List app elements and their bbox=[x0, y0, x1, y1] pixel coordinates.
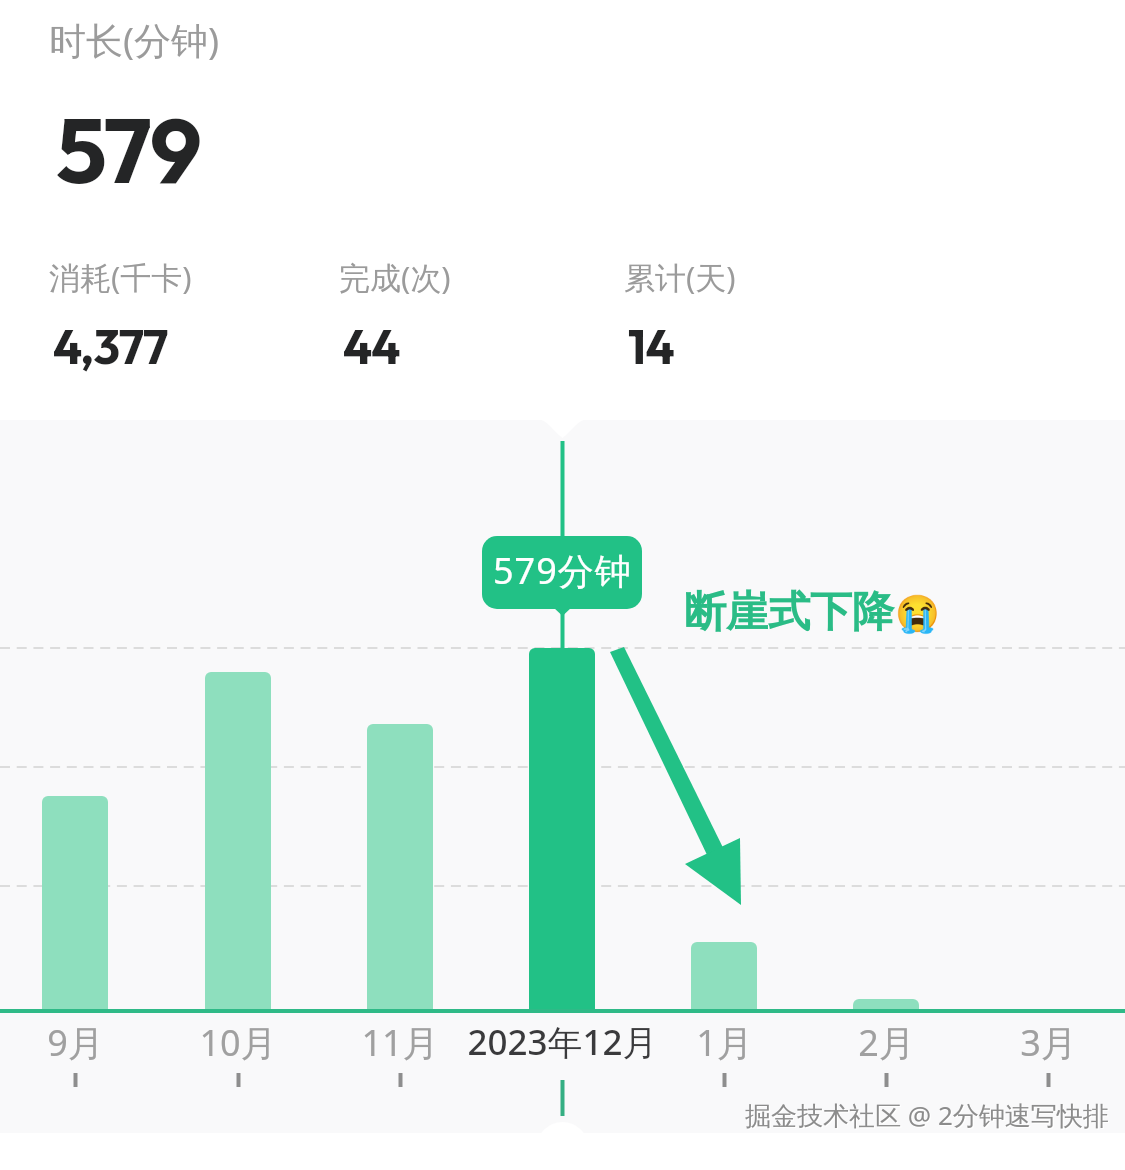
button[interactable]: 消耗(千卡) bbox=[49, 256, 309, 376]
staticText: 断崖式下降 bbox=[684, 586, 894, 639]
button[interactable]: 3月 bbox=[923, 1014, 1125, 1070]
staticText: 579 bbox=[56, 92, 201, 207]
staticText: 掘金技术社区 @ 2分钟速写快排 bbox=[745, 1097, 1109, 1133]
staticText: 1月 bbox=[696, 1018, 753, 1067]
staticText: 3月 bbox=[1020, 1018, 1077, 1067]
button[interactable]: 579分钟 bbox=[482, 536, 642, 609]
staticText: 掘金技术社区 @ 2分钟速写快排 bbox=[746, 1098, 1110, 1134]
staticText: 2月 bbox=[858, 1018, 915, 1067]
staticText: 😭 bbox=[895, 593, 940, 635]
staticText: 2023年12月 bbox=[467, 1018, 658, 1066]
button[interactable]: 累计(天) bbox=[624, 256, 884, 376]
staticText: 4,377 bbox=[53, 316, 168, 376]
staticText: 44 bbox=[343, 316, 400, 376]
staticText: 消耗(千卡) bbox=[49, 256, 192, 298]
button[interactable]: 2023年12月 bbox=[437, 1014, 687, 1070]
button[interactable]: 9月 bbox=[0, 1014, 200, 1070]
staticText: 时长(分钟) bbox=[49, 14, 220, 65]
staticText: 10月 bbox=[199, 1018, 277, 1067]
button[interactable]: 1月 bbox=[599, 1014, 849, 1070]
button[interactable]: 完成(次) bbox=[339, 256, 599, 376]
staticText: 14 bbox=[628, 316, 675, 376]
staticText: 累计(天) bbox=[624, 256, 736, 298]
button[interactable]: 断崖式下降 bbox=[684, 586, 939, 639]
staticText: 完成(次) bbox=[339, 256, 451, 298]
staticText: 11月 bbox=[361, 1018, 439, 1067]
staticText: 579分钟 bbox=[493, 546, 632, 595]
button[interactable]: 11月 bbox=[275, 1014, 525, 1070]
button[interactable]: 10月 bbox=[113, 1014, 363, 1070]
button[interactable]: 2月 bbox=[761, 1014, 1011, 1070]
staticText: 9月 bbox=[47, 1018, 104, 1067]
